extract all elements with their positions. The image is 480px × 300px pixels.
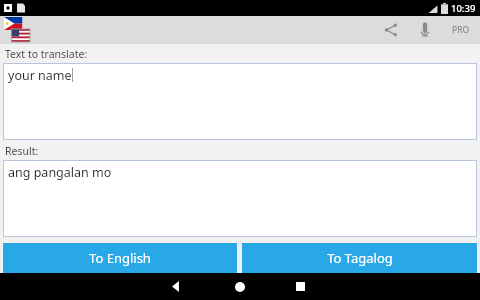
staticText: To English	[89, 249, 151, 267]
staticText: your name	[8, 67, 72, 84]
button[interactable]: PRO	[442, 16, 480, 44]
staticText: PRO	[452, 24, 470, 36]
button[interactable]: Back	[160, 273, 192, 300]
button[interactable]: To Tagalog	[242, 243, 477, 273]
staticText: ang pangalan mo	[8, 164, 112, 181]
button[interactable]: To English	[3, 243, 237, 273]
button[interactable]: Home	[224, 273, 256, 300]
button[interactable]: your name	[3, 63, 477, 140]
staticText: Text to translate:	[5, 47, 88, 61]
button[interactable]: ang pangalan mo	[3, 160, 477, 237]
button[interactable]: Share	[374, 16, 408, 44]
button[interactable]: Voice input	[408, 16, 442, 44]
button[interactable]: Recent apps	[284, 273, 316, 300]
button[interactable]: App icon	[4, 17, 30, 43]
staticText: 10:39	[451, 2, 476, 15]
staticText: To Tagalog	[327, 249, 393, 267]
staticText: Result:	[5, 144, 39, 158]
